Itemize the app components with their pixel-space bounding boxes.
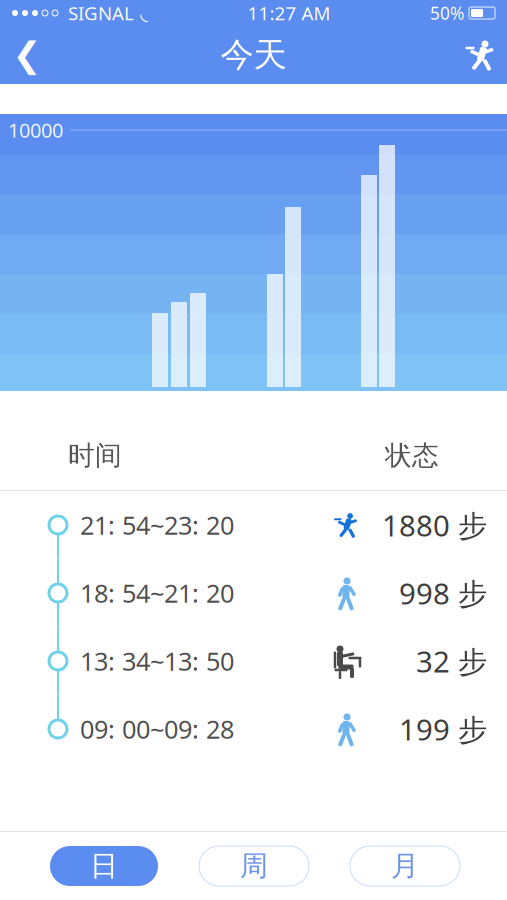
staticText: SIGNAL [68, 1, 134, 25]
staticText: 18: 54~21: 20 [80, 576, 234, 610]
staticText: 13: 34~13: 50 [80, 644, 234, 678]
button[interactable]: 周 [199, 846, 309, 886]
staticText: ◟ [140, 2, 148, 24]
staticText: 09: 00~09: 28 [80, 712, 234, 746]
button[interactable]: 月 [350, 846, 460, 886]
button[interactable]: Activity [453, 26, 507, 84]
button[interactable]: 21: 54~23: 20 [0, 491, 507, 559]
staticText: 今天 [220, 34, 286, 75]
button[interactable]: 18: 54~21: 20 [0, 559, 507, 627]
button[interactable]: Back [0, 26, 54, 84]
staticText: 月 [391, 849, 419, 883]
staticText: 周 [240, 849, 268, 883]
staticText: 199 步 [399, 709, 487, 748]
staticText: 00:00 [16, 390, 70, 418]
button[interactable]: 13: 34~13: 50 [0, 627, 507, 695]
staticText: 1880 步 [382, 505, 487, 544]
staticText: 时间 [68, 439, 122, 472]
staticText: 日 [90, 849, 118, 883]
staticText: 32 步 [416, 641, 487, 680]
staticText: 状态 [385, 439, 439, 472]
staticText: 11:27 AM [247, 1, 330, 25]
staticText: 24:00 [437, 390, 491, 418]
staticText: 50% [430, 1, 464, 24]
button[interactable]: 09: 00~09: 28 [0, 695, 507, 763]
staticText: 21: 54~23: 20 [80, 508, 234, 542]
staticText: 998 步 [399, 573, 487, 612]
staticText: 12:00 [226, 390, 280, 418]
staticText: 10000 [8, 117, 63, 143]
staticText: ❮ [12, 35, 41, 75]
button[interactable]: 日 [50, 846, 158, 886]
